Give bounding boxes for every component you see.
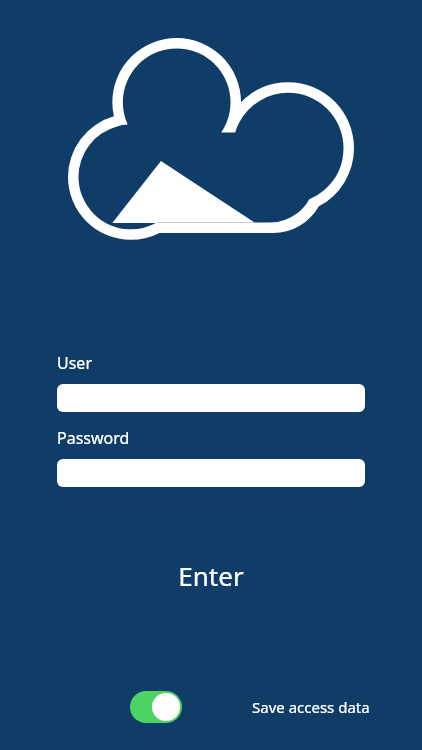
staticText: Password [57,427,130,449]
staticText: User [57,352,92,374]
staticText: Enter [178,558,244,593]
staticText: Save access data [252,697,370,717]
button[interactable]: Enter [0,552,422,598]
button[interactable] [57,384,365,412]
button[interactable]: Save access data toggle, on [130,691,182,723]
button[interactable] [57,459,365,487]
